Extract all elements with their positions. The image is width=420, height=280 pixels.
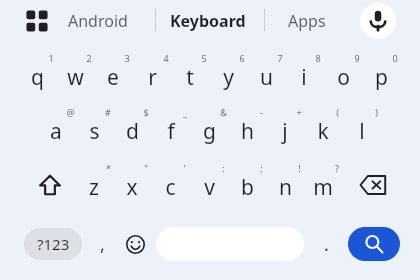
- staticText: ,: [100, 232, 105, 257]
- staticText: 4: [163, 52, 169, 64]
- staticText: ?123: [37, 234, 70, 254]
- staticText: z: [89, 173, 99, 202]
- button[interactable]: Apps: [288, 8, 326, 34]
- button[interactable]: f: [155, 108, 193, 148]
- staticText: @: [66, 106, 75, 118]
- button[interactable]: Android: [68, 8, 128, 34]
- staticText: ": [144, 162, 148, 174]
- staticText: a: [50, 117, 62, 146]
- button[interactable]: o: [327, 54, 365, 94]
- staticText: p: [375, 63, 388, 92]
- button[interactable]: i: [288, 54, 326, 94]
- staticText: e: [107, 63, 119, 92]
- button[interactable]: n: [269, 164, 307, 204]
- staticText: Android: [68, 10, 128, 32]
- staticText: 6: [239, 52, 245, 64]
- staticText: w: [67, 63, 84, 92]
- staticText: j: [282, 117, 288, 146]
- staticText: 5: [201, 52, 207, 64]
- staticText: y: [223, 63, 234, 92]
- staticText: d: [126, 117, 139, 146]
- staticText: 2: [86, 52, 92, 64]
- staticText: h: [241, 117, 254, 146]
- staticText: 3: [124, 52, 130, 64]
- staticText: 8: [315, 52, 321, 64]
- button[interactable]: s: [78, 108, 116, 148]
- button[interactable]: Shift: [31, 166, 69, 204]
- button[interactable]: e: [97, 54, 135, 94]
- staticText: f: [167, 117, 175, 146]
- staticText: +: [296, 106, 302, 118]
- button[interactable]: y: [212, 54, 250, 94]
- staticText: x: [126, 173, 138, 202]
- staticText: g: [203, 117, 216, 146]
- staticText: Keyboard: [170, 10, 246, 32]
- staticText: c: [165, 173, 176, 202]
- staticText: n: [279, 173, 292, 202]
- staticText: 9: [354, 52, 360, 64]
- staticText: !: [298, 162, 301, 174]
- staticText: ;: [260, 162, 263, 174]
- staticText: &: [220, 106, 227, 118]
- staticText: q: [31, 63, 44, 92]
- button[interactable]: h: [231, 108, 269, 148]
- staticText: r: [148, 63, 157, 92]
- button[interactable]: Voice input: [360, 3, 396, 39]
- button[interactable]: q: [21, 54, 59, 94]
- button[interactable]: r: [136, 54, 174, 94]
- staticText: m: [313, 173, 333, 202]
- staticText: _: [183, 106, 187, 118]
- staticText: s: [89, 117, 100, 146]
- button[interactable]: Space: [156, 227, 304, 261]
- staticText: o: [337, 63, 350, 92]
- button[interactable]: t: [174, 54, 212, 94]
- staticText: (: [336, 106, 339, 118]
- staticText: :: [222, 162, 225, 174]
- button[interactable]: a: [40, 108, 78, 148]
- button[interactable]: Search: [348, 227, 400, 261]
- staticText: i: [301, 63, 307, 92]
- button[interactable]: Keyboard: [170, 8, 246, 34]
- button[interactable]: v: [193, 164, 231, 204]
- staticText: u: [260, 63, 273, 92]
- staticText: b: [241, 173, 254, 202]
- button[interactable]: k: [307, 108, 345, 148]
- button[interactable]: c: [154, 164, 192, 204]
- staticText: ): [375, 106, 378, 118]
- staticText: Apps: [288, 10, 326, 32]
- staticText: -: [260, 106, 263, 118]
- button[interactable]: w: [59, 54, 97, 94]
- button[interactable]: m: [307, 164, 345, 204]
- button[interactable]: j: [269, 108, 307, 148]
- button[interactable]: z: [78, 164, 116, 204]
- button[interactable]: .: [312, 228, 340, 260]
- button[interactable]: b: [231, 164, 269, 204]
- staticText: .: [324, 232, 329, 257]
- button[interactable]: p: [365, 54, 403, 94]
- button[interactable]: Backspace: [354, 166, 392, 204]
- staticText: 0: [392, 52, 398, 64]
- staticText: 1: [48, 52, 54, 64]
- staticText: v: [204, 173, 215, 202]
- button[interactable]: d: [116, 108, 154, 148]
- staticText: 7: [277, 52, 283, 64]
- button[interactable]: x: [116, 164, 154, 204]
- button[interactable]: Emoji: [119, 228, 151, 260]
- button[interactable]: l: [346, 108, 384, 148]
- button[interactable]: ,: [86, 228, 118, 260]
- staticText: ?: [335, 162, 339, 174]
- staticText: t: [186, 63, 194, 92]
- staticText: l: [359, 117, 365, 146]
- button[interactable]: g: [193, 108, 231, 148]
- button[interactable]: u: [250, 54, 288, 94]
- button[interactable]: ?123: [24, 228, 82, 260]
- staticText: ': [183, 162, 186, 174]
- staticText: #: [105, 106, 111, 118]
- staticText: *: [106, 162, 111, 174]
- staticText: $: [143, 106, 149, 118]
- button[interactable]: Apps grid: [26, 10, 48, 32]
- staticText: k: [317, 117, 329, 146]
